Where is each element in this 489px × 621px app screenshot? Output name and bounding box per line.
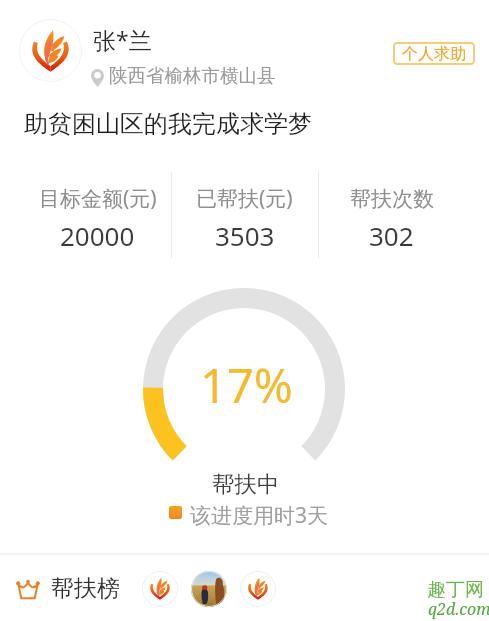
button[interactable]: 帮扶榜 xyxy=(0,556,489,621)
staticText: 已帮扶(元) xyxy=(196,184,293,210)
staticText: 帮扶中 xyxy=(212,470,280,498)
button[interactable]: Supporter avatar xyxy=(191,571,227,607)
button[interactable]: 个人求助 xyxy=(393,42,475,65)
staticText: 20000 xyxy=(60,218,135,250)
staticText: 3503 xyxy=(215,218,275,250)
staticText: 目标金额(元) xyxy=(39,184,157,210)
staticText: q2d.com xyxy=(428,598,489,620)
staticText: 个人求助 xyxy=(402,44,466,64)
staticText: 趣丁网 xyxy=(427,578,484,602)
button[interactable]: Supporter avatar xyxy=(142,571,178,607)
staticText: 302 xyxy=(369,218,414,250)
staticText: 陕西省榆林市横山县 xyxy=(109,64,276,87)
button[interactable]: Supporter avatar xyxy=(240,571,276,607)
staticText: 助贫困山区的我完成求学梦 xyxy=(24,109,312,139)
staticText: 帮扶次数 xyxy=(350,186,434,212)
staticText: 17% xyxy=(200,353,293,417)
staticText: 该进度用时3天 xyxy=(190,501,329,530)
button[interactable]: Organisation avatar xyxy=(19,19,82,82)
staticText: 帮扶榜 xyxy=(51,574,120,603)
staticText: 张*兰 xyxy=(93,24,152,55)
